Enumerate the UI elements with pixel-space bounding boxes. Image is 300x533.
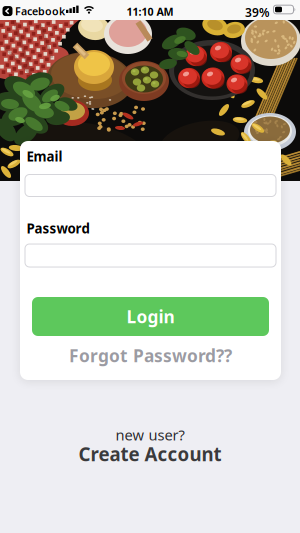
button[interactable]: Create Account	[78, 441, 221, 466]
button[interactable]: Email	[25, 174, 276, 196]
staticText: Facebook	[15, 4, 65, 18]
button[interactable]: Login	[32, 297, 269, 336]
staticText: Create Account	[78, 441, 221, 466]
staticText: 11:10 AM	[126, 4, 173, 19]
staticText: 39%	[245, 4, 270, 20]
staticText: Login	[126, 305, 174, 328]
button[interactable]: Forgot Password??	[69, 344, 232, 367]
staticText: Email	[26, 147, 62, 165]
staticText: Password	[26, 219, 89, 237]
button[interactable]: Password	[25, 244, 276, 267]
staticText: new user?	[115, 425, 184, 444]
staticText: Forgot Password??	[69, 344, 232, 367]
button[interactable]: Back to Facebook	[2, 4, 65, 18]
